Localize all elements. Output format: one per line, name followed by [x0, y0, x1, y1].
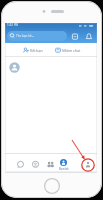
button[interactable]: Bạn bè	[56, 156, 71, 172]
button[interactable]	[15, 159, 26, 171]
staticText: 1:23 PM	[7, 23, 19, 27]
button[interactable]	[7, 60, 95, 75]
button[interactable]: Tìm bạn bè...	[7, 31, 67, 41]
staticText: Nhóm chat	[62, 48, 81, 53]
button[interactable]: Kết bạn	[23, 46, 49, 54]
button[interactable]	[71, 32, 79, 41]
staticText: Kết bạn	[30, 48, 43, 53]
button[interactable]	[30, 159, 41, 171]
staticText: Tìm bạn bè...	[16, 34, 35, 38]
button[interactable]	[45, 159, 56, 171]
button[interactable]	[85, 32, 93, 41]
staticText: Bạn bè	[59, 167, 69, 171]
button[interactable]	[82, 159, 94, 171]
button[interactable]: Nhóm chat	[55, 46, 85, 54]
